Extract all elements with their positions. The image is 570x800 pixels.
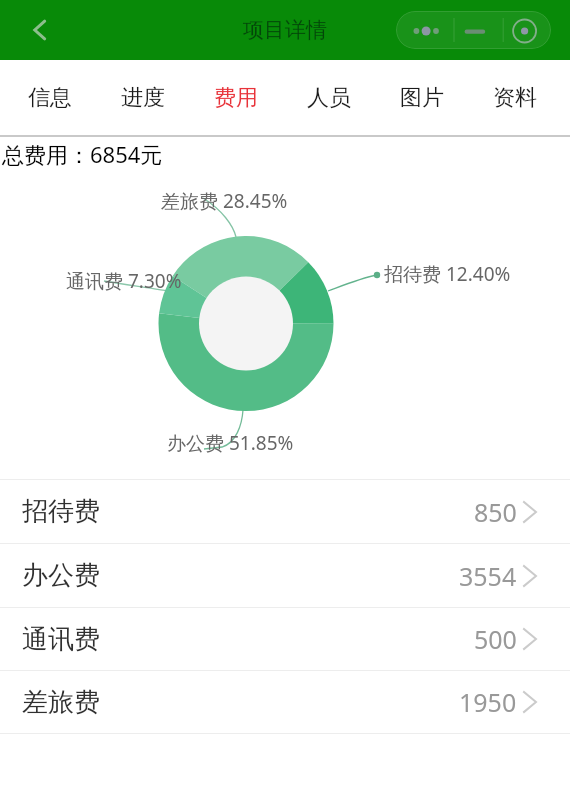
button[interactable]: Minimize: [454, 11, 502, 49]
staticText: 办公费 51.85%: [167, 430, 294, 456]
button[interactable]: 人员: [282, 60, 375, 135]
staticText: 图片: [400, 84, 444, 112]
staticText: 500: [474, 622, 517, 656]
staticText: 总费用：6854元: [2, 139, 163, 169]
button[interactable]: Close: [503, 11, 551, 49]
staticText: 资料: [493, 84, 537, 112]
staticText: 通讯费: [22, 623, 100, 656]
button[interactable]: 差旅费: [0, 670, 570, 733]
button[interactable]: 图片: [375, 60, 468, 135]
staticText: 1950: [459, 685, 517, 719]
staticText: 进度: [121, 84, 165, 112]
staticText: 人员: [307, 84, 351, 112]
staticText: 通讯费 7.30%: [66, 268, 182, 294]
button[interactable]: 信息: [3, 60, 96, 135]
staticText: 招待费: [22, 495, 100, 528]
staticText: 差旅费: [22, 686, 100, 719]
staticText: 招待费 12.40%: [384, 261, 511, 287]
button[interactable]: 进度: [96, 60, 189, 135]
staticText: 850: [474, 495, 517, 529]
staticText: 信息: [28, 84, 72, 112]
button[interactable]: Back: [18, 8, 62, 52]
button[interactable]: 招待费: [0, 479, 570, 543]
staticText: 费用: [214, 84, 258, 112]
button[interactable]: 资料: [468, 60, 561, 135]
staticText: 办公费: [22, 559, 100, 592]
staticText: 3554: [459, 559, 517, 593]
button[interactable]: More: [396, 11, 453, 49]
button[interactable]: 通讯费: [0, 607, 570, 670]
button[interactable]: 费用: [189, 60, 282, 135]
staticText: 差旅费 28.45%: [161, 188, 288, 214]
staticText: 项目详情: [243, 17, 327, 43]
button[interactable]: 办公费: [0, 543, 570, 607]
